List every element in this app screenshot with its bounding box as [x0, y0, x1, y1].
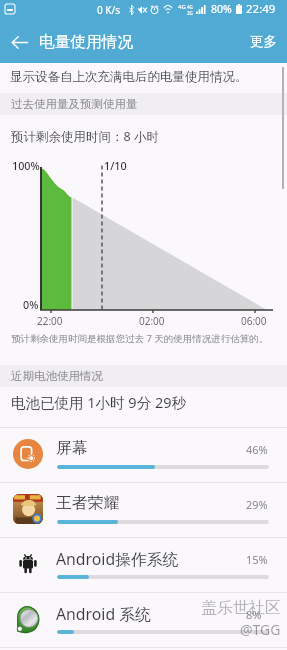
staticText: 显示设备自上次充满电后的电量使用情况。 [10, 69, 248, 85]
staticText: 1/10 [104, 158, 127, 173]
staticText: 更多 [250, 33, 277, 50]
staticText: 0% [23, 297, 39, 312]
staticText: 盖乐世社区 [201, 598, 281, 618]
button[interactable]: 更多 [240, 23, 287, 60]
staticText: 王者荣耀 [56, 493, 120, 513]
staticText: 过去使用量及预测使用量 [11, 97, 138, 111]
staticText: 电量使用情况 [39, 32, 134, 52]
button[interactable]: 王者荣耀 [0, 483, 287, 538]
staticText: 29% [246, 497, 268, 512]
staticText: @TGG [240, 620, 281, 639]
staticText: 4G [178, 3, 186, 11]
staticText: 22:49 [246, 1, 276, 17]
staticText: 近期电池使用情况 [11, 369, 103, 383]
staticText: 100% [12, 158, 40, 173]
button[interactable]: 屏幕 [0, 428, 287, 483]
staticText: 预计剩余使用时间：8 小时 [11, 128, 159, 145]
staticText: 46% [246, 442, 268, 457]
staticText: 2G [187, 10, 193, 16]
staticText: Android操作系统 [56, 548, 179, 570]
staticText: 02:00 [139, 314, 165, 328]
staticText: Android 系统 [56, 603, 151, 625]
staticText: 06:00 [241, 314, 267, 328]
button[interactable]: Android 系统 [0, 593, 287, 648]
staticText: 4G [187, 4, 193, 10]
staticText: 电池已使用 1小时 9分 29秒 [11, 392, 186, 412]
staticText: 屏幕 [56, 438, 88, 458]
staticText: 15% [246, 552, 268, 567]
button[interactable]: Android操作系统 [0, 538, 287, 593]
button[interactable]: Back [0, 23, 38, 61]
staticText: 8% [246, 607, 262, 622]
staticText: 0 K/s [97, 3, 121, 17]
staticText: 80% [211, 2, 232, 16]
staticText: 预计剩余使用时间是根据您过去 7 天的使用情况进行估算的。 [11, 332, 269, 345]
staticText: 22:00 [37, 314, 63, 328]
